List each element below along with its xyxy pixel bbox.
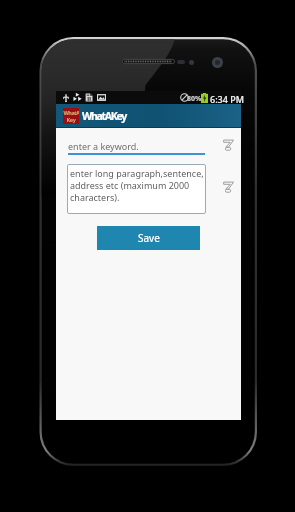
staticText: 6:34 PM xyxy=(210,93,244,105)
staticText: WhatAKey xyxy=(82,109,127,123)
staticText: 80% xyxy=(187,94,202,104)
staticText: enter long paragraph,sentence, address e… xyxy=(70,167,204,203)
staticText: WhatA xyxy=(63,109,79,116)
button[interactable]: enter long paragraph,sentence, address e… xyxy=(67,164,206,214)
staticText: Key xyxy=(66,116,76,123)
other: Show key xyxy=(223,138,234,151)
button[interactable]: Save xyxy=(97,226,200,250)
staticText: Save xyxy=(138,231,160,245)
staticText: enter a keyword. xyxy=(68,140,139,152)
button[interactable]: Show key xyxy=(217,175,239,197)
button[interactable]: Show key xyxy=(217,133,239,155)
other: Show key xyxy=(223,180,234,193)
